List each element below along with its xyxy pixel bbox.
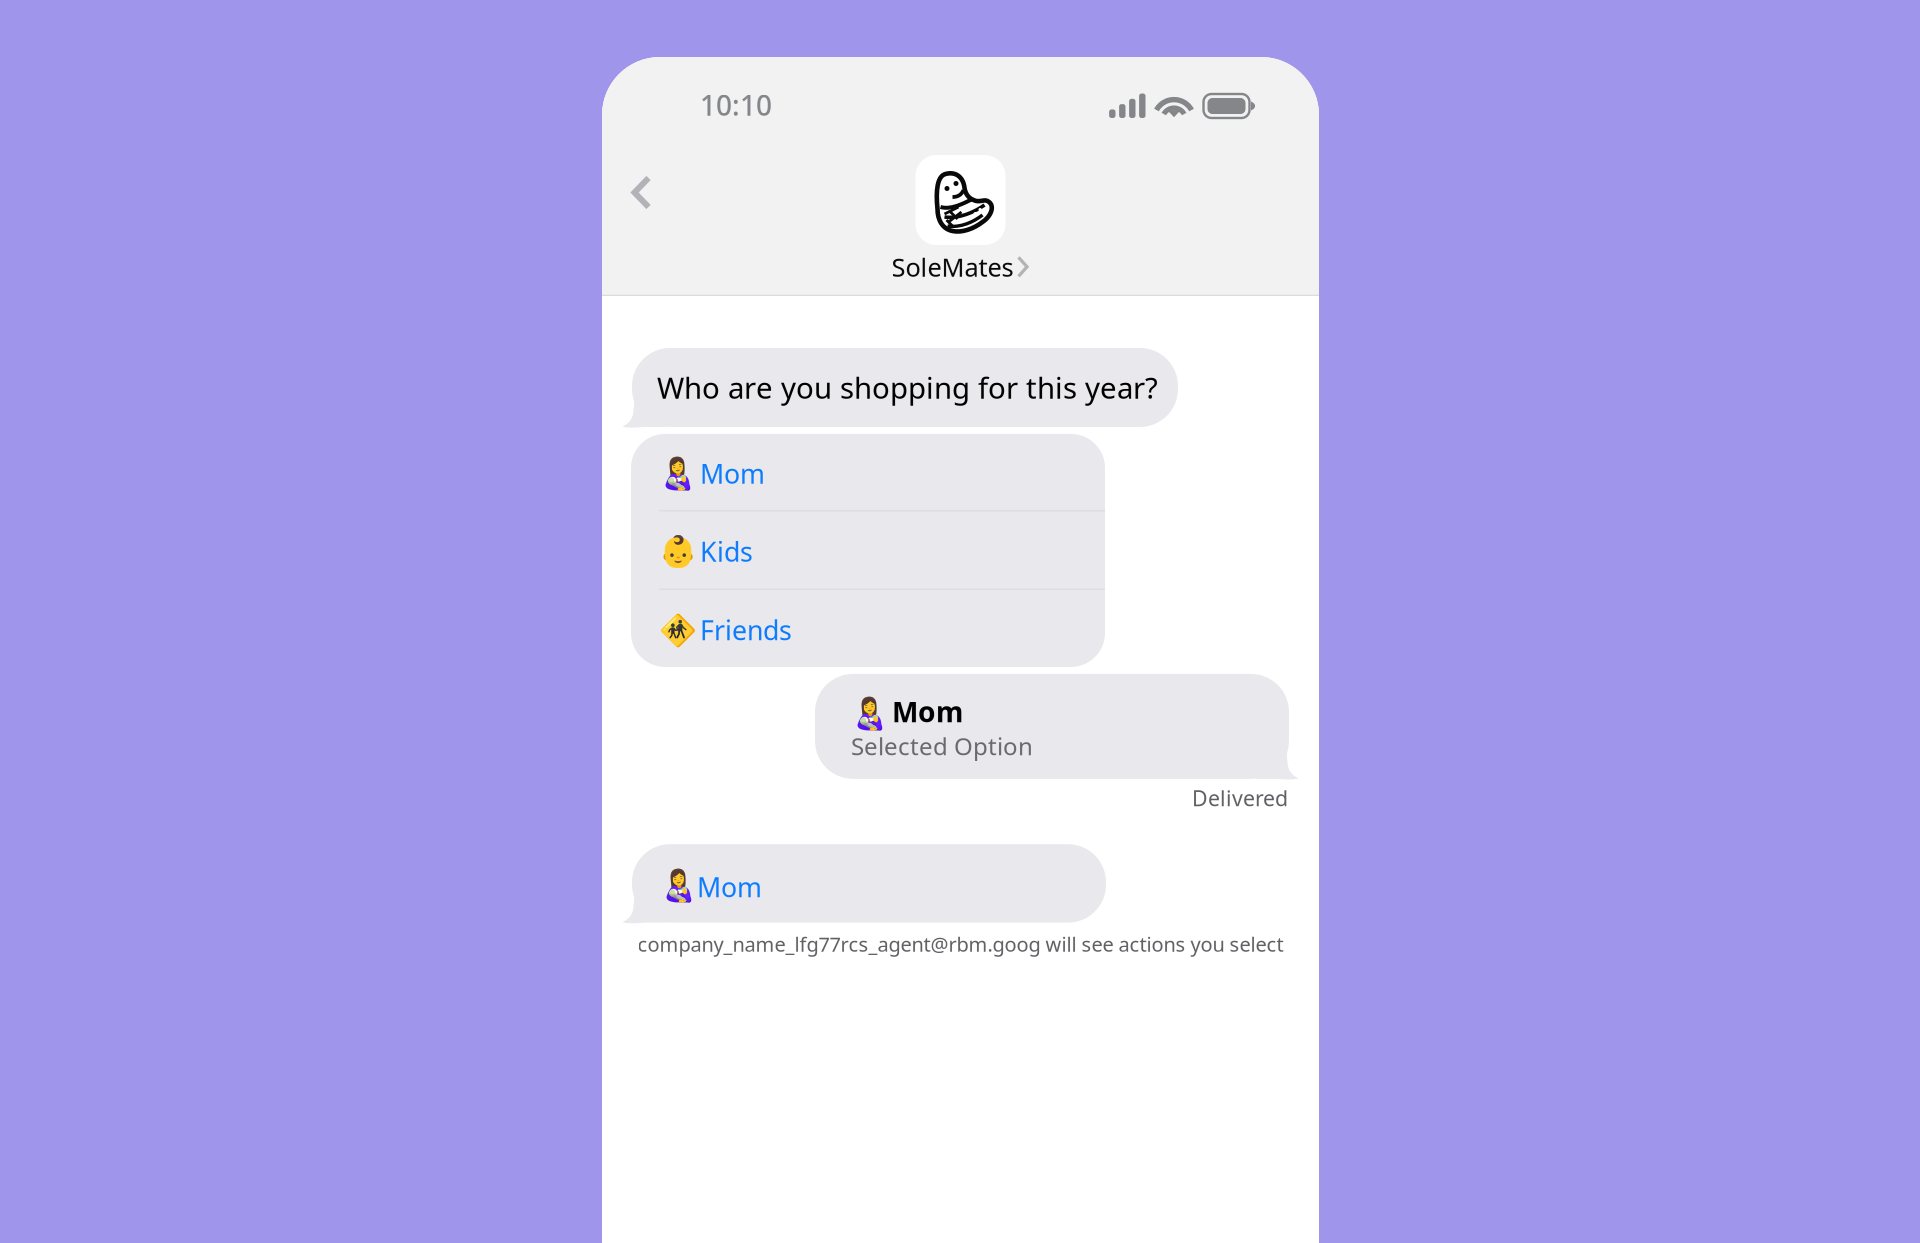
staticText: 🚸	[659, 613, 697, 648]
staticText: 👶	[659, 534, 697, 569]
button[interactable]: SoleMates	[891, 250, 1029, 284]
staticText: 10:10	[700, 86, 772, 124]
button[interactable]: Back	[602, 155, 676, 234]
staticText: Kids	[700, 534, 753, 569]
staticText: Mom	[700, 456, 765, 491]
staticText: SoleMates	[891, 250, 1013, 284]
staticText: Friends	[700, 612, 792, 648]
staticText: company_name_lfg77rcs_agent@rbm.goog wil…	[637, 931, 1283, 957]
button[interactable]: 👩‍🍼	[631, 434, 1105, 510]
staticText: Mom	[697, 869, 762, 905]
button[interactable]: 🚸	[631, 590, 1105, 667]
staticText: 👩‍🍼	[660, 868, 698, 903]
staticText: Delivered	[1192, 784, 1288, 812]
staticText: Mom	[892, 693, 963, 730]
staticText: 👩‍🍼	[851, 696, 889, 731]
staticText: 👩‍🍼	[659, 456, 697, 491]
button[interactable]: 👶	[631, 511, 1105, 588]
staticText: Who are you shopping for this year?	[657, 368, 1158, 407]
staticText: Selected Option	[851, 730, 1033, 762]
